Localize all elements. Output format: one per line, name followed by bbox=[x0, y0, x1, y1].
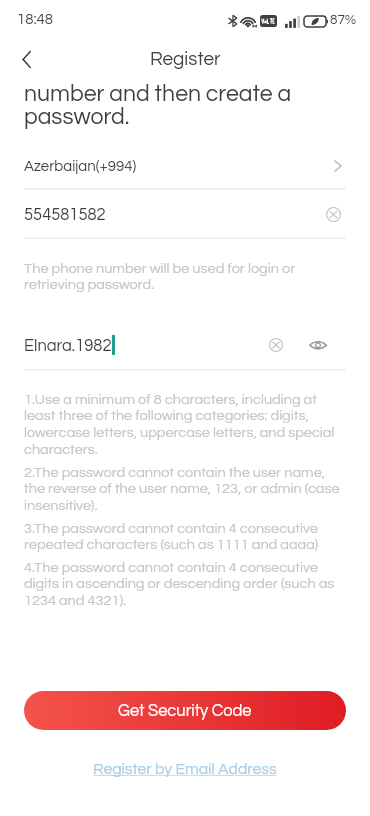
staticText: 18:48 bbox=[17, 12, 54, 27]
staticText: 554581582 bbox=[24, 206, 106, 223]
staticText: 3.The password cannot contain 4 consecut… bbox=[24, 521, 347, 552]
staticText: 87% bbox=[330, 13, 357, 27]
button[interactable]: Back bbox=[8, 42, 44, 76]
button[interactable]: Clear password bbox=[265, 334, 287, 356]
button[interactable]: Azerbaijan(+994) bbox=[0, 150, 370, 182]
staticText: The phone number will be used for login … bbox=[24, 261, 347, 292]
staticText: 2.The password cannot contain the user n… bbox=[24, 465, 347, 513]
button[interactable]: Register by Email Address bbox=[87, 758, 283, 780]
button[interactable]: Show password bbox=[307, 334, 329, 356]
staticText: 1.Use a minimum of 8 characters, includi… bbox=[24, 392, 347, 457]
button[interactable]: Clear phone number bbox=[322, 203, 344, 225]
staticText: Get Security Code bbox=[118, 702, 252, 719]
staticText: Register bbox=[150, 49, 221, 69]
staticText: Register by Email Address bbox=[93, 761, 277, 777]
button[interactable]: Get Security Code bbox=[24, 691, 346, 730]
staticText: 4.The password cannot contain 4 consecut… bbox=[24, 560, 347, 608]
staticText: Elnara.1982 bbox=[24, 337, 112, 354]
staticText: Azerbaijan(+994) bbox=[24, 159, 137, 174]
staticText: number and then create a password. bbox=[24, 82, 292, 129]
